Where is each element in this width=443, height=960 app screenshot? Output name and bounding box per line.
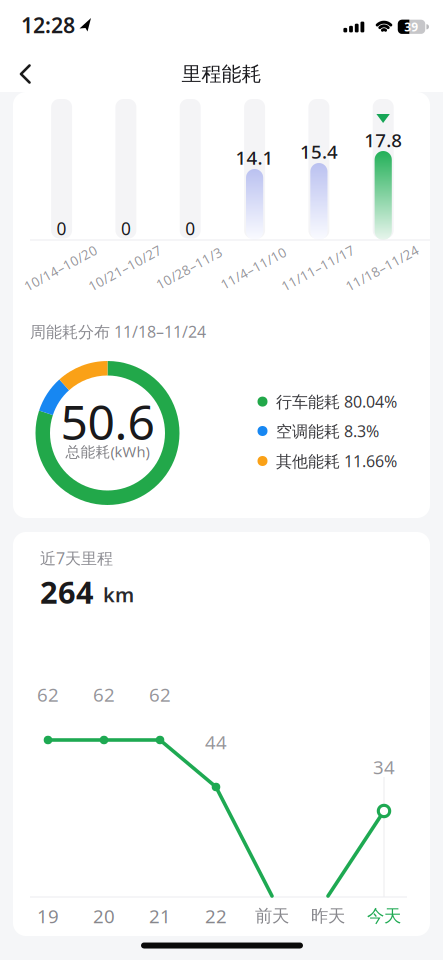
staticText: 15.4: [300, 139, 338, 164]
staticText: 0: [57, 217, 67, 240]
staticText: 62: [93, 682, 115, 707]
staticText: 20: [93, 904, 115, 928]
staticText: 21: [149, 904, 171, 928]
staticText: 264: [40, 571, 94, 612]
staticText: 今天: [367, 905, 401, 927]
staticText: 22: [205, 904, 227, 928]
staticText: 总能耗(kWh): [65, 442, 149, 461]
staticText: 62: [37, 682, 59, 707]
button[interactable]: [0, 0, 443, 960]
staticText: 62: [149, 682, 171, 707]
staticText: 39: [404, 19, 418, 35]
staticText: km: [103, 581, 134, 608]
staticText: 前天: [255, 905, 289, 927]
staticText: 10/14–10/20: [20, 259, 101, 277]
staticText: 34: [373, 755, 395, 779]
staticText: 行车能耗 80.04%: [276, 391, 397, 412]
staticText: 44: [205, 730, 227, 754]
staticText: 50.6: [60, 390, 154, 453]
staticText: 12:28: [21, 11, 75, 39]
staticText: 17.8: [364, 128, 402, 152]
staticText: 14.1: [236, 145, 274, 170]
staticText: 近7天里程: [40, 547, 113, 569]
staticText: 10/21–10/27: [84, 259, 165, 277]
staticText: 11/4–11/10: [217, 259, 290, 277]
staticText: 其他能耗 11.66%: [276, 450, 397, 472]
staticText: 0: [185, 217, 195, 240]
staticText: 10/28–11/3: [153, 259, 226, 277]
staticText: 0: [121, 217, 131, 240]
staticText: 11/18–11/24: [342, 259, 423, 277]
staticText: 昨天: [311, 905, 345, 927]
staticText: 里程能耗: [181, 62, 261, 86]
staticText: 19: [37, 904, 59, 928]
staticText: 空调能耗 8.3%: [276, 420, 379, 442]
staticText: 周能耗分布 11/18–11/24: [30, 321, 206, 342]
staticText: 11/11–11/17: [277, 259, 358, 277]
